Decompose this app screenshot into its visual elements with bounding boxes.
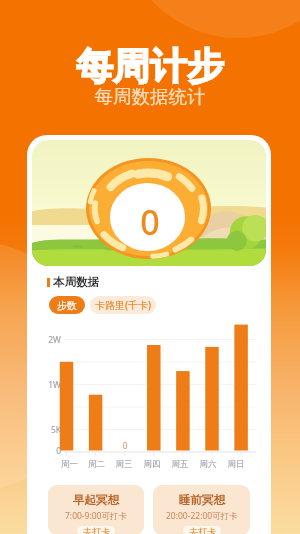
staticText: 周四 xyxy=(138,459,166,470)
staticText: 卡路里(千卡) xyxy=(95,298,152,312)
staticText: 周二 xyxy=(83,459,110,470)
button[interactable]: 去打卡 xyxy=(183,526,221,534)
staticText: 每周数据统计 xyxy=(0,85,300,108)
staticText: 7:00-9:00可打卡 xyxy=(65,510,127,522)
staticText: 0 xyxy=(126,199,174,245)
button[interactable]: 步数 xyxy=(49,296,85,314)
staticText: 本周数据 xyxy=(53,275,99,289)
staticText: 周日 xyxy=(222,459,250,470)
staticText: 2W xyxy=(43,334,61,346)
staticText: 周三 xyxy=(110,459,138,470)
staticText: 周五 xyxy=(166,459,194,470)
staticText: 早起冥想 xyxy=(73,493,119,507)
staticText: 步数 xyxy=(57,299,77,312)
staticText: 20:00-22:00可打卡 xyxy=(166,510,238,522)
button[interactable]: 卡路里(千卡) xyxy=(90,296,156,314)
staticText: 每周计步 xyxy=(0,43,300,90)
staticText: 1W xyxy=(43,379,61,391)
button[interactable]: 早起冥想 xyxy=(48,485,144,534)
staticText: 0 xyxy=(43,445,61,457)
staticText: 去打卡 xyxy=(189,526,216,534)
staticText: 周六 xyxy=(194,459,222,470)
staticText: 0 xyxy=(117,440,133,451)
staticText: 周一 xyxy=(56,459,83,470)
button[interactable]: 睡前冥想 xyxy=(153,485,250,534)
staticText: 睡前冥想 xyxy=(179,493,225,507)
staticText: 去打卡 xyxy=(83,526,110,534)
button[interactable]: 去打卡 xyxy=(77,526,115,534)
staticText: 5K xyxy=(43,424,61,436)
